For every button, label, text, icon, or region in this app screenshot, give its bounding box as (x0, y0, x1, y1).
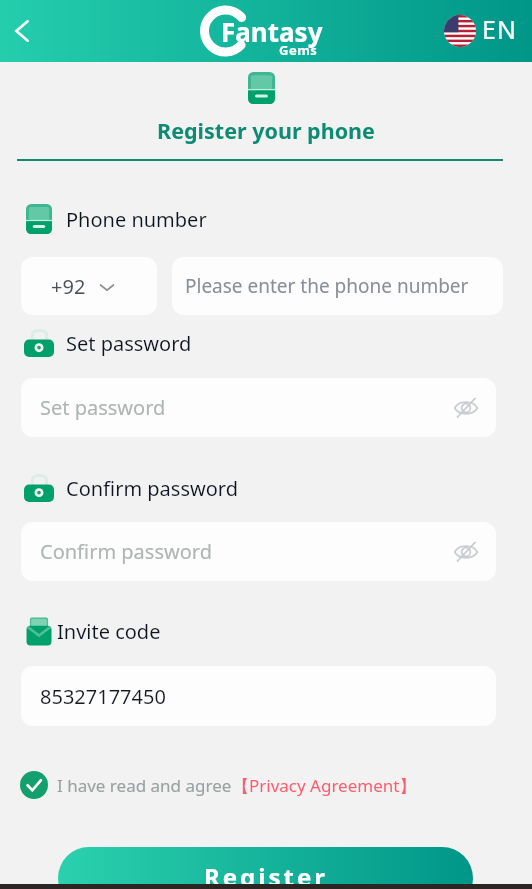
button[interactable]: EN (444, 14, 518, 48)
staticText: Set password (66, 330, 192, 357)
staticText: Confirm password (66, 475, 238, 502)
staticText: Register your phone (0, 116, 532, 145)
staticText: Set password (40, 394, 166, 421)
staticText: Please enter the phone number (185, 273, 469, 299)
button[interactable]: Back (4, 13, 40, 49)
staticText: Invite code (57, 618, 161, 645)
button[interactable]: +92 (21, 257, 157, 315)
staticText: Phone number (66, 206, 207, 233)
staticText: Gems (279, 41, 318, 59)
staticText: EN (482, 12, 518, 46)
staticText: 【Privacy Agreement】 (232, 774, 417, 797)
staticText: +92 (51, 273, 86, 300)
staticText: Fantasy (221, 14, 323, 49)
staticText: I have read and agree (57, 774, 232, 797)
staticText: 85327177450 (40, 683, 166, 710)
button[interactable]: Register (58, 847, 473, 889)
button[interactable]: Set password (21, 378, 496, 437)
button[interactable]: Please enter the phone number (172, 257, 503, 315)
staticText: Register (204, 860, 328, 889)
staticText: Confirm password (40, 538, 212, 565)
button[interactable]: Confirm password (21, 522, 496, 581)
button[interactable]: Show password (451, 537, 481, 567)
button[interactable]: Show password (451, 393, 481, 423)
button[interactable]: I have read and agree (20, 770, 417, 800)
button[interactable]: 85327177450 (21, 666, 496, 726)
